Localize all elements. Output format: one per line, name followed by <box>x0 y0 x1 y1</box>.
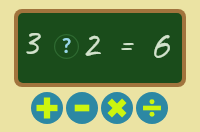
button[interactable]: Divide <box>136 92 168 124</box>
staticText: ? <box>62 33 72 57</box>
staticText: = <box>118 23 133 65</box>
staticText: 6 <box>149 17 169 72</box>
button[interactable]: Multiply <box>101 92 133 124</box>
staticText: 3 <box>21 18 39 67</box>
button[interactable]: Minus <box>66 92 98 124</box>
button[interactable]: Plus <box>31 92 63 124</box>
staticText: 2 <box>81 20 99 69</box>
button[interactable]: Unknown operator <box>54 34 79 59</box>
